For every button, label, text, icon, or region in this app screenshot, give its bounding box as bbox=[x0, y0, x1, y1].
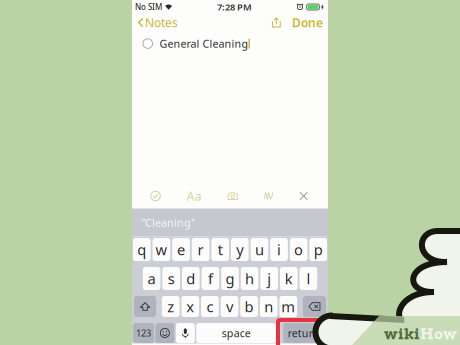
staticText: y bbox=[236, 240, 243, 259]
staticText: l bbox=[306, 269, 310, 288]
staticText: x bbox=[186, 297, 194, 316]
staticText: Aa bbox=[187, 188, 202, 204]
staticText: p bbox=[314, 240, 323, 259]
button[interactable]: d bbox=[182, 267, 200, 290]
staticText: j bbox=[267, 269, 271, 288]
button[interactable]: q bbox=[133, 238, 151, 261]
button[interactable]: e bbox=[172, 238, 190, 261]
staticText: 7:28 PM bbox=[217, 1, 252, 13]
button[interactable]: m bbox=[279, 296, 297, 317]
staticText: Notes bbox=[145, 14, 178, 30]
button[interactable]: r bbox=[192, 238, 209, 261]
staticText: c bbox=[206, 297, 213, 316]
staticText: q bbox=[137, 240, 146, 259]
staticText: n bbox=[264, 297, 273, 316]
button[interactable]: v bbox=[221, 296, 238, 317]
button[interactable]: z bbox=[162, 296, 180, 317]
staticText: t bbox=[218, 240, 223, 259]
staticText: a bbox=[148, 269, 156, 288]
button[interactable]: i bbox=[270, 238, 288, 261]
staticText: r bbox=[198, 240, 204, 259]
staticText: i bbox=[277, 240, 281, 259]
button[interactable]: 123 bbox=[133, 323, 154, 343]
staticText: General Cleaning bbox=[159, 36, 248, 51]
button[interactable]: x bbox=[181, 296, 199, 317]
staticText: o bbox=[294, 240, 303, 259]
button[interactable]: s bbox=[162, 267, 180, 290]
staticText: return bbox=[288, 326, 320, 340]
button[interactable]: w bbox=[153, 238, 170, 261]
button[interactable]: return bbox=[283, 323, 324, 343]
staticText: No SIM bbox=[135, 2, 162, 12]
button[interactable]: Dictate bbox=[176, 323, 195, 343]
button[interactable]: t bbox=[211, 238, 229, 261]
button[interactable]: Camera bbox=[227, 191, 238, 200]
button[interactable]: n bbox=[260, 296, 277, 317]
button[interactable]: Checklist item bbox=[143, 39, 152, 48]
button[interactable]: Delete bbox=[303, 296, 326, 317]
staticText: d bbox=[186, 269, 195, 288]
button[interactable]: Share bbox=[272, 17, 281, 28]
staticText: b bbox=[245, 297, 254, 316]
staticText: Done bbox=[292, 14, 323, 30]
button[interactable]: y bbox=[231, 238, 249, 261]
button[interactable]: Done bbox=[292, 14, 323, 30]
staticText: v bbox=[226, 297, 233, 316]
button[interactable]: Emoji bbox=[155, 323, 174, 343]
button[interactable]: j bbox=[260, 267, 278, 290]
button[interactable]: o bbox=[290, 238, 307, 261]
staticText: space bbox=[222, 326, 251, 340]
staticText: h bbox=[245, 269, 254, 288]
button[interactable]: g bbox=[221, 267, 239, 290]
staticText: 123 bbox=[136, 327, 151, 339]
button[interactable]: c bbox=[201, 296, 219, 317]
button[interactable]: a bbox=[143, 267, 160, 290]
button[interactable]: l bbox=[299, 267, 317, 290]
button[interactable]: Close bbox=[299, 192, 308, 200]
staticText: u bbox=[255, 240, 264, 259]
staticText: m bbox=[281, 297, 295, 316]
staticText: w bbox=[155, 240, 167, 259]
button[interactable]: p bbox=[309, 238, 327, 261]
button[interactable]: Markup bbox=[264, 192, 274, 200]
staticText: e bbox=[177, 240, 185, 259]
staticText: s bbox=[168, 269, 175, 288]
staticText: wiki bbox=[384, 325, 420, 343]
staticText: f bbox=[208, 269, 213, 288]
staticText: k bbox=[285, 269, 293, 288]
button[interactable]: u bbox=[251, 238, 268, 261]
button[interactable]: Shift bbox=[134, 296, 156, 317]
button[interactable]: Checklist bbox=[150, 190, 161, 201]
button[interactable]: space bbox=[196, 323, 276, 343]
button[interactable]: f bbox=[202, 267, 219, 290]
button[interactable]: k bbox=[280, 267, 298, 290]
staticText: How bbox=[420, 325, 457, 343]
button[interactable]: h bbox=[241, 267, 258, 290]
button[interactable]: Text format bbox=[187, 188, 202, 204]
staticText: "Cleaning" bbox=[141, 215, 195, 230]
staticText: g bbox=[225, 269, 234, 288]
button[interactable]: b bbox=[240, 296, 258, 317]
button[interactable]: "Cleaning" bbox=[141, 215, 195, 230]
staticText: z bbox=[167, 297, 174, 316]
button[interactable]: Notes bbox=[138, 14, 178, 30]
